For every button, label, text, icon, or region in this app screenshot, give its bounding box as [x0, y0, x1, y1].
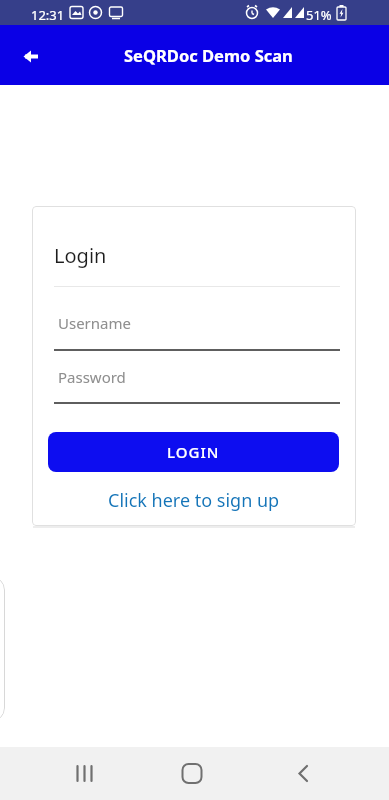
button[interactable]: LOGIN	[48, 432, 339, 472]
staticText: Login	[54, 242, 107, 269]
button[interactable]	[168, 747, 216, 800]
staticText: 51%	[306, 6, 332, 24]
staticText: Password	[58, 367, 126, 387]
staticText: LOGIN	[167, 442, 220, 462]
staticText: Click here to sign up	[108, 488, 280, 513]
staticText: SeQRDoc Demo Scan	[124, 44, 293, 66]
button[interactable]	[61, 747, 109, 800]
staticText: Username	[58, 313, 131, 333]
staticText: 12:31	[31, 6, 65, 24]
button[interactable]	[0, 25, 56, 85]
button[interactable]: Click here to sign up	[32, 486, 356, 514]
button[interactable]	[279, 747, 327, 800]
